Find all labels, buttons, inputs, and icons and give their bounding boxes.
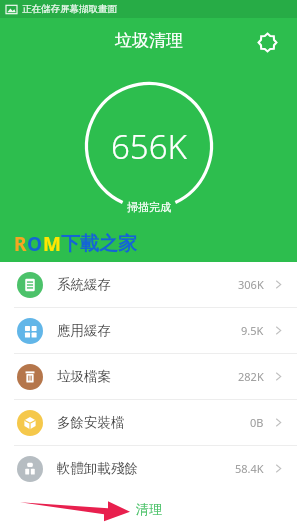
staticText: 0B [250,415,264,430]
staticText: 垃圾清理 [115,30,183,51]
button[interactable]: 清理 [136,492,162,525]
button[interactable]: 軟體卸載殘餘 [0,446,297,491]
button[interactable]: Settings [253,28,281,56]
staticText: 應用緩存 [57,322,111,339]
staticText: 282K [238,369,264,384]
staticText: 下載之家 [61,232,137,256]
button[interactable]: 應用緩存 [0,308,297,353]
staticText: 清理 [136,501,162,517]
staticText: 垃圾檔案 [57,368,111,385]
staticText: 58.4K [235,461,264,476]
staticText: 多餘安裝檔 [57,414,125,431]
staticText: 掃描完成 [127,200,171,214]
button[interactable]: 垃圾檔案 [0,354,297,399]
staticText: 正在儲存屏幕擷取畫面 [22,3,117,15]
staticText: M [43,231,61,257]
staticText: 系統緩存 [57,276,111,293]
button[interactable]: 多餘安裝檔 [0,400,297,445]
staticText: 656K [111,124,187,169]
button[interactable]: 系統緩存 [0,262,297,307]
staticText: O [27,231,43,257]
staticText: 306K [238,277,264,292]
staticText: 軟體卸載殘餘 [57,460,138,477]
staticText: R [14,231,27,257]
staticText: 9.5K [241,323,264,338]
